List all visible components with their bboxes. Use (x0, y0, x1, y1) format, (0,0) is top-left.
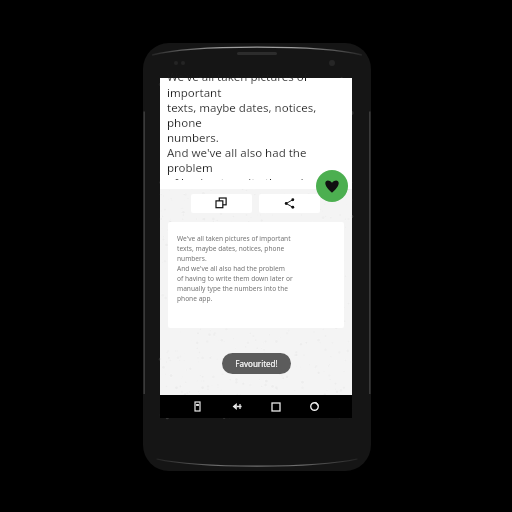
button[interactable]: Favourited! (222, 353, 291, 374)
button[interactable]: Favourite (316, 170, 348, 202)
staticText: We've all taken pictures of important te… (167, 69, 345, 180)
button[interactable]: Home (256, 395, 295, 418)
button[interactable]: Copy (191, 194, 252, 213)
staticText: We've all taken pictures of important te… (177, 234, 293, 303)
button[interactable]: We've all taken pictures of important te… (168, 222, 344, 328)
staticText: Favourited! (235, 358, 278, 369)
button[interactable]: Recents (295, 395, 334, 418)
button[interactable]: Menu (178, 395, 217, 418)
button[interactable]: Back (217, 395, 256, 418)
button[interactable]: Share (259, 194, 320, 213)
